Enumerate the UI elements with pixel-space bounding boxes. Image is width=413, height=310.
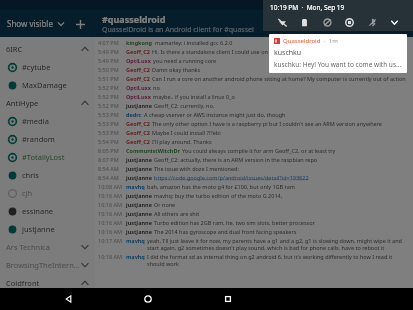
button[interactable]: Home bbox=[137, 288, 159, 310]
staticText: mavhq bbox=[126, 183, 145, 190]
button[interactable]: Ars Technica bbox=[0, 238, 95, 256]
button[interactable]: 10:17 AM bbox=[95, 236, 413, 252]
button[interactable]: Recent apps bbox=[217, 288, 239, 310]
button[interactable]: AntiHype bbox=[0, 94, 95, 112]
button[interactable]: Expand bbox=[386, 14, 402, 30]
button[interactable]: 5:51 PM bbox=[95, 74, 413, 83]
button[interactable]: 4:07 PM bbox=[95, 38, 413, 47]
button[interactable]: Do not disturb bbox=[319, 14, 335, 30]
button[interactable]: 10:08 AM bbox=[95, 182, 413, 191]
staticText: kingkong bbox=[126, 39, 153, 46]
button[interactable]: 5:49 PM bbox=[95, 56, 413, 65]
button[interactable]: Auto rotate bbox=[341, 14, 357, 30]
staticText: A cheap vserver or AWS instance might ju… bbox=[144, 111, 409, 118]
button[interactable]: Back bbox=[58, 288, 80, 310]
staticText: BrowsingTheInternet bbox=[6, 260, 80, 270]
staticText: 5:53 PM bbox=[98, 120, 119, 127]
button[interactable]: 5:52 PM bbox=[95, 83, 413, 92]
button[interactable]: Battery bbox=[296, 14, 312, 30]
staticText: You could always compile it for arm Geof… bbox=[182, 147, 409, 154]
button[interactable]: 10:16 AM bbox=[95, 200, 413, 209]
button[interactable]: 8:54 AM bbox=[95, 173, 413, 182]
staticText: OptiLuxx bbox=[126, 57, 151, 64]
staticText: essinane bbox=[22, 206, 54, 216]
staticText: OptiLuxx bbox=[126, 84, 151, 91]
staticText: 5:49 PM bbox=[98, 48, 119, 55]
staticText: justJanne bbox=[126, 219, 152, 226]
button[interactable]: 5:53 PM bbox=[95, 119, 413, 128]
staticText: justJanne bbox=[126, 228, 152, 235]
staticText: 8:54 AM bbox=[98, 174, 119, 181]
staticText: AntiHype bbox=[6, 98, 80, 108]
staticText: justJanne bbox=[126, 210, 152, 217]
button[interactable]: justJanne bbox=[0, 220, 95, 238]
button[interactable]: Bluetooth off bbox=[364, 14, 380, 30]
button[interactable]: #cytube bbox=[0, 58, 95, 76]
button[interactable]: 5:49 PM bbox=[95, 47, 413, 56]
button[interactable]: 10:16 AM bbox=[95, 191, 413, 200]
button[interactable]: chris bbox=[0, 166, 95, 184]
staticText: The issue with doze I mentioned: bbox=[154, 165, 409, 172]
staticText: 5:50 PM bbox=[98, 66, 119, 73]
staticText: Geoff_C2: actually, there is an ARM vers… bbox=[154, 156, 409, 163]
staticText: All others are shit bbox=[154, 210, 409, 217]
button[interactable]: Filter bbox=[54, 17, 68, 31]
button[interactable]: #random bbox=[0, 130, 95, 148]
button[interactable]: Quasseldroid bbox=[269, 34, 407, 73]
staticText: I'll play around. Thanks bbox=[152, 138, 409, 145]
button[interactable]: 5:52 PM bbox=[95, 101, 413, 110]
button[interactable]: 10:16 AM bbox=[95, 227, 413, 236]
button[interactable]: 5:53 PM bbox=[95, 128, 413, 137]
staticText: mavhq bbox=[126, 237, 145, 244]
staticText: justJanne bbox=[126, 174, 152, 181]
staticText: CommunistWitchDr bbox=[126, 147, 180, 154]
staticText: Show visible bbox=[7, 18, 53, 29]
staticText: Can I run a core on another android phon… bbox=[152, 75, 409, 82]
button[interactable]: 5:50 PM bbox=[95, 65, 413, 74]
staticText: #media bbox=[22, 116, 49, 126]
staticText: Coldfront bbox=[6, 278, 80, 288]
staticText: cjh bbox=[22, 188, 33, 198]
staticText: I did the format sd as internal thing on… bbox=[147, 253, 409, 267]
staticText: QuasselDroid is an Android client for #q… bbox=[102, 25, 254, 35]
button[interactable] bbox=[95, 294, 413, 310]
button[interactable]: 5:52 PM bbox=[95, 92, 413, 101]
button[interactable]: 10:16 AM bbox=[95, 218, 413, 227]
button[interactable]: MaxDamage bbox=[0, 76, 95, 94]
staticText: #cytube bbox=[22, 62, 51, 72]
button[interactable]: 8:07 PM bbox=[95, 155, 413, 164]
button[interactable]: 10:16 AM bbox=[95, 209, 413, 218]
button[interactable]: cjh bbox=[0, 184, 95, 202]
button[interactable]: 8:05 PM bbox=[95, 146, 413, 155]
button[interactable]: Coldfront bbox=[0, 274, 95, 292]
staticText: Geoff_C2 bbox=[126, 138, 150, 145]
staticText: bah, amazon has the moto g4 for £100, bu… bbox=[147, 183, 409, 190]
button[interactable]: Wifi off bbox=[274, 14, 290, 30]
button[interactable]: 5:53 PM bbox=[95, 110, 413, 119]
staticText: Or none bbox=[154, 201, 409, 208]
staticText: #TotallyLost bbox=[22, 152, 65, 162]
staticText: mavhq: buy the turbo edition of the moto… bbox=[154, 192, 409, 199]
button[interactable]: #media bbox=[0, 112, 95, 130]
staticText: dedrc bbox=[126, 111, 142, 118]
button[interactable]: essinane bbox=[0, 202, 95, 220]
staticText: Maybe I could install ?!?ebi bbox=[152, 129, 409, 136]
staticText: Geoff_C2: currently, no. bbox=[154, 102, 409, 109]
staticText: chris bbox=[22, 170, 39, 180]
staticText: The 2014 has gyroscope and dual front fa… bbox=[154, 228, 409, 235]
button[interactable]: Show visible bbox=[7, 18, 54, 29]
button[interactable]: 5:54 PM bbox=[95, 137, 413, 146]
button[interactable]: 8:54 AM bbox=[95, 164, 413, 173]
staticText: 8:54 AM bbox=[98, 165, 119, 172]
button[interactable]: BrowsingTheInternet bbox=[0, 256, 95, 274]
button[interactable]: #TotallyLost bbox=[0, 148, 95, 166]
staticText: mamarley: i installed gcc 6.2.0 bbox=[155, 39, 409, 46]
button[interactable]: Add bbox=[72, 16, 88, 32]
button[interactable]: #sto bbox=[0, 292, 95, 310]
button[interactable]: More options bbox=[393, 15, 411, 33]
staticText: 5:52 PM bbox=[98, 93, 119, 100]
button[interactable]: 10:18 AM bbox=[95, 252, 413, 268]
button[interactable]: 6IRC bbox=[0, 40, 95, 58]
staticText: 4:07 PM bbox=[98, 39, 119, 46]
